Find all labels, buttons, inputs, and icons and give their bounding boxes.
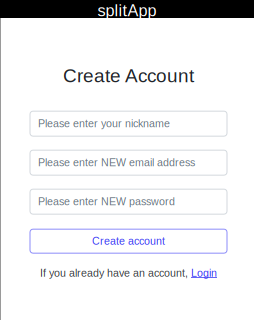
button[interactable]: Please enter NEW password (30, 189, 227, 214)
staticText: Please enter NEW password (38, 196, 175, 208)
staticText: Login (191, 267, 217, 279)
button[interactable]: Please enter NEW email address (30, 150, 227, 175)
button[interactable]: Login (191, 267, 217, 279)
staticText: Please enter your nickname (38, 118, 170, 130)
staticText: Create account (92, 235, 165, 247)
staticText: splitApp (97, 1, 156, 20)
staticText: Create Account (63, 65, 194, 86)
staticText: If you already have an account, (40, 267, 191, 279)
staticText: Please enter NEW email address (38, 157, 195, 169)
button[interactable]: Create account (30, 229, 227, 253)
button[interactable]: Please enter your nickname (30, 111, 227, 136)
